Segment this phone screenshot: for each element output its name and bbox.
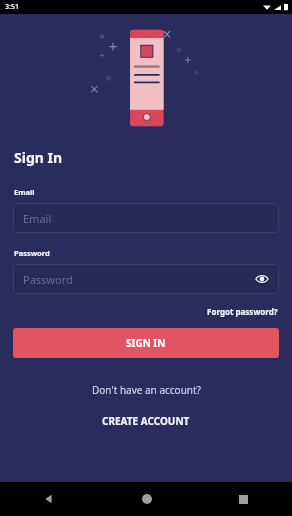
button[interactable]: Email [13, 203, 279, 233]
button[interactable]: Forgot password? [193, 303, 292, 320]
button[interactable]: Password [13, 264, 279, 294]
staticText: 3:51 [5, 2, 19, 12]
staticText: CREATE ACCOUNT [102, 414, 190, 428]
staticText: Email [14, 187, 35, 197]
button[interactable]: Back [0, 482, 98, 516]
button[interactable]: CREATE ACCOUNT [90, 410, 202, 432]
staticText: Forgot password? [207, 306, 278, 317]
staticText: Email [23, 211, 52, 226]
staticText: Sign In [14, 148, 63, 167]
button[interactable]: SIGN IN [13, 328, 279, 358]
button[interactable]: Show password [252, 269, 272, 289]
staticText: SIGN IN [126, 336, 166, 350]
button[interactable]: Recents [195, 482, 292, 516]
staticText: Don't have an account? [92, 383, 201, 397]
staticText: Password [23, 272, 73, 287]
staticText: Password [14, 248, 50, 258]
button[interactable]: Home [98, 482, 195, 516]
